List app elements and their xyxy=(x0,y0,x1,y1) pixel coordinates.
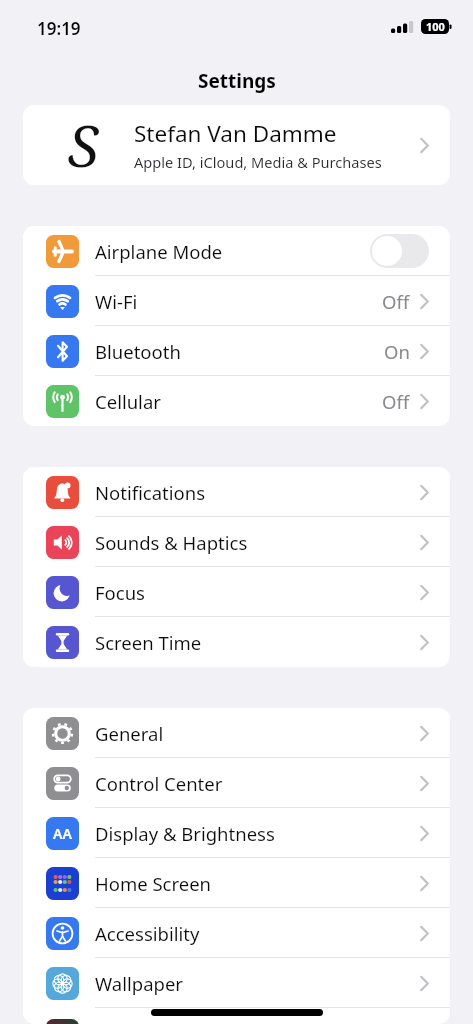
staticText: Bluetooth xyxy=(95,339,181,364)
staticText: Off xyxy=(382,289,410,314)
staticText: Airplane Mode xyxy=(95,239,223,264)
button[interactable]: Bluetooth xyxy=(23,326,450,376)
staticText: Display & Brightness xyxy=(95,821,275,846)
button[interactable]: Home Screen xyxy=(23,858,450,908)
staticText: Off xyxy=(382,389,410,414)
button[interactable]: Focus xyxy=(23,567,450,617)
staticText: General xyxy=(95,721,164,746)
button[interactable]: AA xyxy=(23,808,450,858)
button[interactable]: General xyxy=(23,708,450,758)
staticText: Sounds & Haptics xyxy=(95,530,248,555)
button[interactable]: Sounds & Haptics xyxy=(23,517,450,567)
button[interactable]: Control Center xyxy=(23,758,450,808)
staticText: Cellular xyxy=(95,389,161,414)
button[interactable]: Wallpaper xyxy=(23,958,450,1008)
staticText: Focus xyxy=(95,580,145,605)
staticText: 19:19 xyxy=(37,17,81,40)
button[interactable]: Wi-Fi xyxy=(23,276,450,326)
staticText: Wallpaper xyxy=(95,971,183,996)
staticText: Control Center xyxy=(95,771,223,796)
staticText: Stefan Van Damme xyxy=(134,118,337,149)
button[interactable] xyxy=(370,234,429,268)
staticText: Wi-Fi xyxy=(95,289,138,314)
button[interactable]: Screen Time xyxy=(23,617,450,667)
button[interactable]: Notifications xyxy=(23,467,450,517)
button[interactable]: Accessibility xyxy=(23,908,450,958)
staticText: AA xyxy=(53,824,72,843)
button[interactable]: Cellular xyxy=(23,376,450,426)
staticText: Accessibility xyxy=(95,921,200,946)
staticText: Settings xyxy=(198,68,276,94)
staticText: 100 xyxy=(426,19,445,34)
staticText: S xyxy=(68,107,99,183)
button[interactable]: Airplane Mode xyxy=(23,226,450,276)
staticText: On xyxy=(384,339,410,364)
staticText: Apple ID, iCloud, Media & Purchases xyxy=(134,152,382,172)
button[interactable]: S xyxy=(23,105,450,185)
staticText: Screen Time xyxy=(95,630,202,655)
staticText: Notifications xyxy=(95,480,206,505)
staticText: Home Screen xyxy=(95,871,212,896)
